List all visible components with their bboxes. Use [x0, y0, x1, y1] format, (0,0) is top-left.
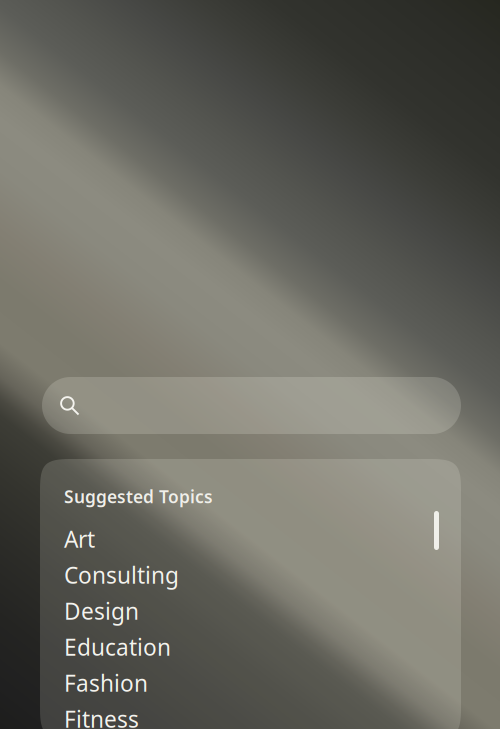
staticText: Art	[64, 524, 95, 554]
button[interactable]	[42, 377, 461, 434]
staticText: Consulting	[64, 560, 179, 590]
button[interactable]: Consulting	[40, 557, 461, 593]
staticText: Fitness	[64, 704, 139, 729]
button[interactable]: Fashion	[40, 665, 461, 701]
staticText: Fashion	[64, 668, 148, 698]
button[interactable]: Art	[40, 521, 461, 557]
staticText: Design	[64, 596, 139, 626]
staticText: Suggested Topics	[64, 485, 213, 508]
button[interactable]: Design	[40, 593, 461, 629]
button[interactable]: Education	[40, 629, 461, 665]
staticText: Education	[64, 632, 171, 662]
button[interactable]: Fitness	[40, 701, 461, 729]
